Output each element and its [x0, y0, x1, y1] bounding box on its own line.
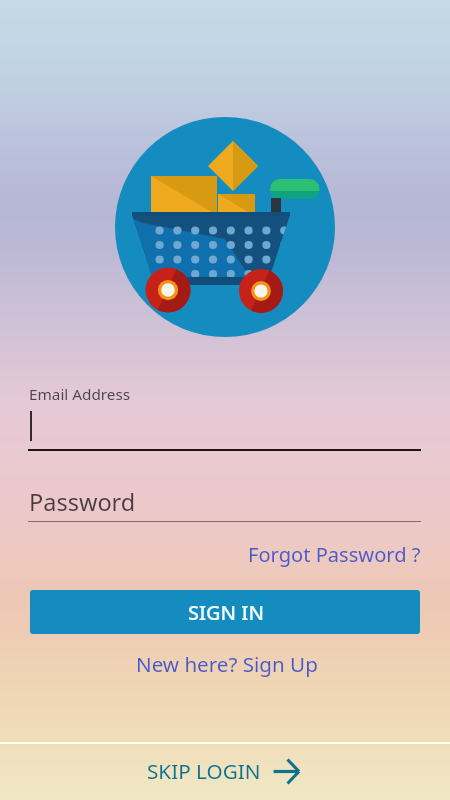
staticText: Password	[29, 486, 136, 518]
button[interactable]: SKIP LOGIN	[0, 744, 450, 800]
button[interactable]: Email Address	[28, 378, 422, 451]
staticText: SIGN IN	[188, 599, 264, 626]
staticText: New here? Sign Up	[136, 650, 318, 678]
staticText: Email Address	[29, 384, 131, 405]
button[interactable]: Password	[28, 484, 422, 524]
button[interactable]: SIGN IN	[30, 590, 420, 634]
staticText: Forgot Password ?	[248, 541, 421, 568]
other: Skip login	[272, 758, 302, 786]
button[interactable]: Forgot Password ?	[238, 533, 431, 576]
staticText: SKIP LOGIN	[147, 757, 261, 785]
button[interactable]: New here? Sign Up	[126, 642, 328, 686]
